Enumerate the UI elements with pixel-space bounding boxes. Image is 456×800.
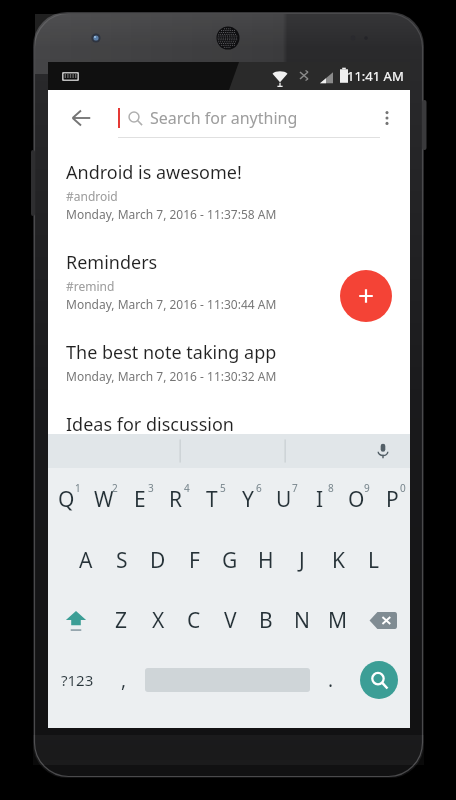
button[interactable]: N [284,590,320,650]
button[interactable]: Backspace [356,590,410,650]
staticText: Monday, March 7, 2016 - 11:30:32 AM [66,368,277,384]
button[interactable]: R [158,468,194,530]
button[interactable]: Search for anything [118,98,380,138]
staticText: 4 [184,481,190,495]
staticText: Ideas for discussion [66,412,234,437]
button[interactable]: W [85,468,122,530]
button[interactable]: Android is awesome! [48,146,410,236]
staticText: N [294,606,310,635]
button[interactable]: Back [64,101,98,135]
staticText: . [328,667,334,693]
button[interactable]: Reminders [48,236,410,326]
staticText: I [316,485,324,514]
button[interactable]: . [314,650,347,710]
staticText: 1 [75,481,81,495]
staticText: P [386,485,399,514]
button[interactable]: H [248,530,284,590]
staticText: Monday, March 7, 2016 - 11:30:44 AM [66,296,277,312]
staticText: Y [242,485,254,514]
button[interactable]: K [320,530,356,590]
button[interactable]: E [122,468,158,530]
button[interactable]: Shift [48,590,103,650]
staticText: 3 [148,481,154,495]
button[interactable]: ?123 [48,650,107,710]
staticText: 11:41 AM [347,67,404,85]
staticText: , [121,667,127,693]
button[interactable]: Search [347,650,410,710]
button[interactable]: A [67,530,104,590]
staticText: #remind [66,278,115,294]
staticText: K [332,546,345,575]
staticText: Z [115,606,128,635]
staticText: B [259,606,273,635]
staticText: 7 [292,481,298,495]
staticText: J [299,546,305,575]
staticText: 6 [256,481,262,495]
staticText: 8 [328,481,334,495]
staticText: G [222,546,238,575]
staticText: U [276,485,292,514]
button[interactable]: M [320,590,356,650]
button[interactable]: C [176,590,212,650]
staticText: Search for anything [150,107,298,129]
button[interactable]: S [104,530,140,590]
button[interactable]: Space [140,650,314,710]
button[interactable]: L [356,530,392,590]
button[interactable]: Voice input [370,438,396,464]
staticText: A [79,546,93,575]
staticText: Reminders [66,250,158,275]
button[interactable]: Q [48,468,85,530]
button[interactable]: The best note taking app [48,326,410,398]
staticText: L [368,546,380,575]
button[interactable]: B [248,590,284,650]
button[interactable]: , [107,650,140,710]
staticText: ?123 [61,670,94,690]
button[interactable]: Add note [340,270,392,322]
staticText: F [189,546,200,575]
staticText: The best note taking app [66,340,277,365]
staticText: Android is awesome! [66,160,242,185]
button[interactable]: D [140,530,176,590]
staticText: O [348,485,365,514]
button[interactable]: X [140,590,176,650]
button[interactable]: T [194,468,230,530]
staticText: R [169,485,183,514]
button[interactable]: U [266,468,302,530]
staticText: 0 [400,481,406,495]
button[interactable]: I [302,468,338,530]
staticText: H [258,546,274,575]
staticText: T [206,485,218,514]
staticText: Monday, March 7, 2016 - 11:37:58 AM [66,206,277,222]
staticText: Q [58,485,75,514]
staticText: 5 [220,481,226,495]
staticText: #android [66,188,118,204]
staticText: E [134,485,146,514]
staticText: D [150,546,166,575]
button[interactable]: Ideas for discussion [48,398,410,470]
staticText: V [224,606,237,635]
button[interactable]: P [374,468,410,530]
button[interactable]: More options [370,101,404,135]
staticText: 2 [112,481,118,495]
staticText: S [116,546,128,575]
button[interactable]: F [176,530,212,590]
staticText: X [152,606,165,635]
staticText: C [187,606,201,635]
button[interactable]: O [338,468,374,530]
button[interactable]: V [212,590,248,650]
button[interactable]: J [284,530,320,590]
button[interactable]: Z [103,590,140,650]
staticText: M [328,606,348,635]
staticText: 9 [364,481,370,495]
button[interactable]: Y [230,468,266,530]
staticText: W [94,485,114,514]
button[interactable]: G [212,530,248,590]
